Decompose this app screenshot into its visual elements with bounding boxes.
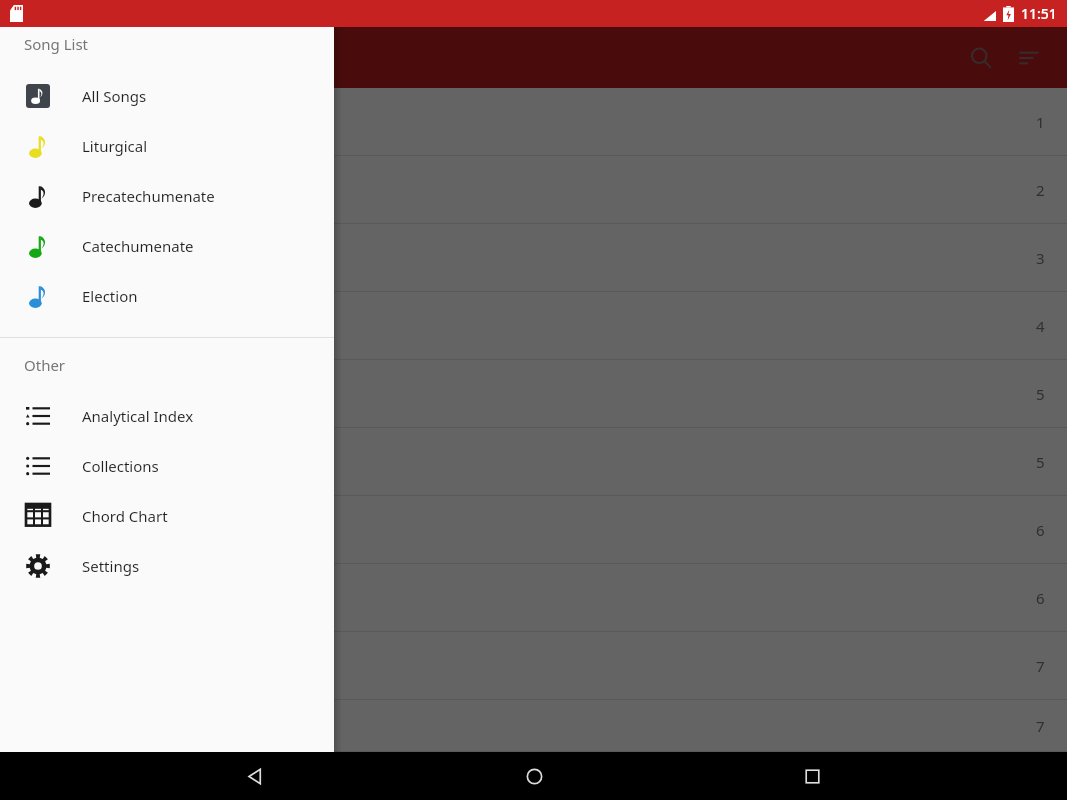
staticText: Election (82, 286, 138, 306)
button[interactable]: Election (0, 271, 334, 321)
button[interactable]: Sort (1005, 34, 1053, 82)
button[interactable]: Shepherd Me O God (0, 360, 1067, 428)
button[interactable]: Chord Chart (0, 491, 334, 541)
staticText: Catechumenate (82, 236, 194, 256)
staticText: 7 (1036, 716, 1045, 736)
staticText: 11:51 (1021, 4, 1057, 23)
staticText: Settings (82, 556, 140, 576)
staticText: 7 (1036, 656, 1045, 676)
staticText: 3 (1036, 248, 1045, 268)
button[interactable]: Praise to the Lord (0, 224, 1067, 292)
button[interactable]: Catechumenate (0, 221, 334, 271)
button[interactable]: Settings (0, 541, 334, 591)
button[interactable]: Lord of All Hopefulness (0, 156, 1067, 224)
staticText: Lord of All Hopefulness (24, 179, 210, 202)
staticText: 6 (1036, 520, 1045, 540)
staticText: 4 (1036, 316, 1045, 336)
button[interactable]: Home (510, 752, 558, 800)
staticText: 6 (1036, 588, 1045, 608)
button[interactable]: Alleluia Sing to Jesus (0, 632, 1067, 700)
button[interactable]: Precatechumenate (0, 171, 334, 221)
button[interactable]: Here I Am Lord (0, 428, 1067, 496)
staticText: 1 (1036, 112, 1045, 132)
staticText: Chord Chart (82, 506, 168, 526)
staticText: Be Thou My Vision (24, 519, 171, 542)
button[interactable]: Analytical Index (0, 391, 334, 441)
staticText: Analytical Index (82, 406, 194, 426)
staticText: Praise to the Lord (24, 247, 165, 270)
staticText: 2 (1036, 180, 1045, 200)
staticText: 5 (1036, 452, 1045, 472)
button[interactable]: Come Holy Spirit (0, 88, 1067, 156)
button[interactable]: Liturgical (0, 121, 334, 171)
staticText: Here I Am Lord (24, 451, 145, 474)
staticText: All Songs (82, 86, 147, 106)
button[interactable]: Be Thou My Vision (0, 496, 1067, 564)
staticText: Precatechumenate (82, 186, 215, 206)
button[interactable]: Back (231, 752, 279, 800)
button[interactable]: All Songs (0, 71, 334, 121)
button[interactable]: Search (957, 34, 1005, 82)
staticText: O God Our Help (24, 315, 152, 338)
staticText: Liturgical (82, 136, 148, 156)
staticText: Other (24, 355, 66, 375)
button[interactable]: Recents (788, 752, 836, 800)
button[interactable]: All Creatures (with refrains) (0, 564, 1067, 632)
staticText: Collections (82, 456, 159, 476)
button[interactable]: Now Thank We All Our God (0, 700, 1067, 752)
button[interactable]: O God Our Help (0, 292, 1067, 360)
button[interactable]: Collections (0, 441, 334, 491)
staticText: Song List (24, 34, 89, 54)
staticText: 5 (1036, 384, 1045, 404)
